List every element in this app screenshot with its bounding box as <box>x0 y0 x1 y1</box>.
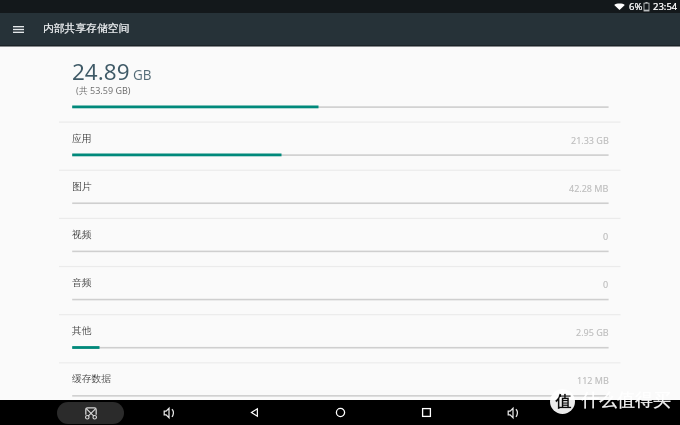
button[interactable]: 缓存数据 <box>59 362 621 410</box>
staticText: 6% <box>629 0 643 13</box>
staticText: 视频 <box>72 229 92 241</box>
button[interactable]: Recent apps <box>414 400 439 425</box>
button[interactable]: 其他 <box>59 314 621 362</box>
staticText: 0 <box>603 230 609 242</box>
staticText: (共 53.59 GB) <box>76 84 131 96</box>
button[interactable]: 音频 <box>59 266 621 314</box>
staticText: 图片 <box>72 181 92 193</box>
button[interactable]: Volume up <box>500 400 525 425</box>
staticText: 23:54 <box>653 0 678 13</box>
button[interactable]: 视频 <box>59 218 621 266</box>
staticText: 112 MB <box>577 374 609 386</box>
staticText: 0 <box>603 278 609 290</box>
staticText: 音频 <box>72 277 92 289</box>
staticText: 什么值得买 <box>581 389 671 412</box>
staticText: 2.95 GB <box>576 326 609 338</box>
button[interactable]: Back <box>242 400 267 425</box>
staticText: 42.28 MB <box>569 182 609 194</box>
staticText: 值 <box>555 392 571 412</box>
button[interactable]: Open navigation menu <box>6 17 31 42</box>
staticText: 24.89 <box>72 56 130 87</box>
staticText: GB <box>133 66 152 84</box>
button[interactable]: Screenshot <box>57 402 124 424</box>
staticText: 应用 <box>72 133 92 145</box>
button[interactable]: Volume <box>156 400 181 425</box>
button[interactable]: 应用 <box>59 122 621 170</box>
staticText: 其他 <box>72 325 92 337</box>
staticText: 内部共享存储空间 <box>43 22 130 36</box>
staticText: 21.33 GB <box>571 134 609 146</box>
button[interactable]: Home <box>328 400 353 425</box>
staticText: 缓存数据 <box>72 373 112 385</box>
button[interactable]: 图片 <box>59 170 621 218</box>
